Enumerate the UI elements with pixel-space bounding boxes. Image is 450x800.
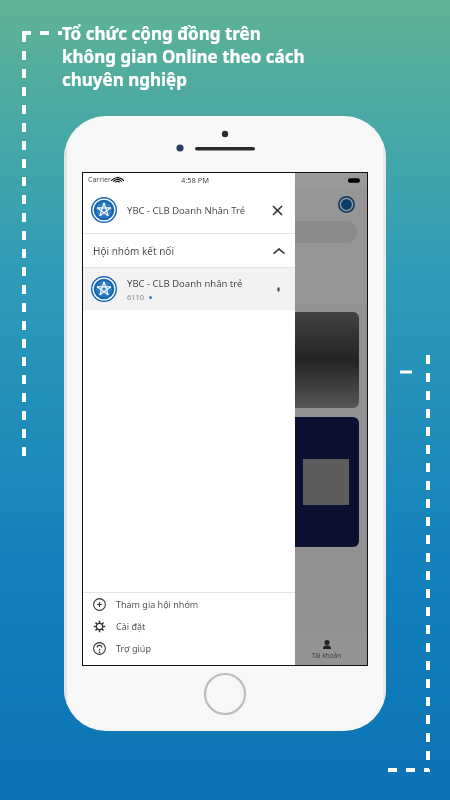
button[interactable]: YBC - CLB Doanh Nhân Trẻ <box>83 187 295 233</box>
button[interactable]: Cài đặt <box>83 615 295 637</box>
staticText: 4:58 PM <box>181 175 210 185</box>
staticText: Tài khoản <box>312 651 342 660</box>
staticText: Trợ giúp <box>116 642 151 654</box>
button[interactable]: Hội nhóm kết nối <box>83 234 295 267</box>
button[interactable]: Tùy chọn <box>269 280 287 298</box>
button[interactable]: YBC - CLB Doanh nhân trẻ <box>83 268 295 310</box>
staticText: Tổ chức cộng đồng trên không gian Online… <box>62 22 450 91</box>
staticText: Hội nhóm kết nối <box>93 244 273 258</box>
staticText: Cài đặt <box>116 620 146 632</box>
staticText: Carrier <box>88 175 111 185</box>
staticText: YBC - CLB Doanh nhân trẻ <box>127 277 243 290</box>
button[interactable]: Trợ giúp <box>83 637 295 659</box>
staticText: 6110 <box>127 292 145 302</box>
staticText: YBC - CLB Doanh Nhân Trẻ <box>127 204 267 217</box>
staticText: Carrier <box>88 175 111 185</box>
button[interactable]: Đóng <box>267 200 287 220</box>
staticText: Tham gia hội nhóm <box>116 598 199 610</box>
button[interactable]: Tham gia hội nhóm <box>83 593 295 615</box>
